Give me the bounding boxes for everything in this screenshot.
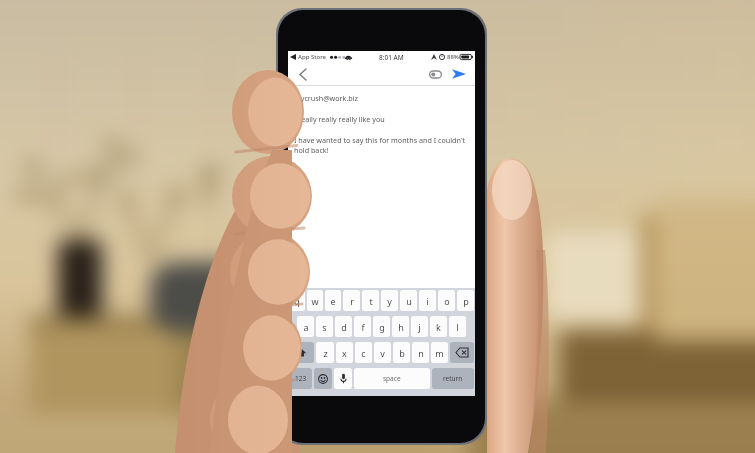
staticText: 88% — [447, 53, 459, 61]
staticText: x — [342, 347, 347, 359]
button[interactable]: c — [355, 342, 372, 363]
staticText: z — [323, 347, 328, 359]
button[interactable]: b — [393, 342, 410, 363]
button[interactable]: m — [431, 342, 448, 363]
button[interactable]: h — [392, 316, 409, 337]
button[interactable]: f — [354, 316, 371, 337]
button[interactable]: y — [381, 290, 398, 311]
button[interactable]: d — [335, 316, 352, 337]
button[interactable]: s — [316, 316, 333, 337]
staticText: w — [311, 295, 319, 307]
staticText: l — [456, 321, 459, 333]
button[interactable]: o — [438, 290, 455, 311]
button[interactable]: Emoji — [314, 368, 332, 389]
staticText: g — [379, 321, 385, 333]
staticText: r — [350, 295, 354, 307]
staticText: f — [361, 321, 365, 333]
staticText: i — [426, 295, 429, 307]
button[interactable]: e — [325, 290, 341, 311]
button[interactable]: j — [411, 316, 428, 337]
button[interactable]: x — [336, 342, 353, 363]
staticText: h — [398, 321, 404, 333]
staticText: o — [444, 295, 450, 307]
button[interactable]: k — [430, 316, 447, 337]
staticText: v — [380, 347, 385, 359]
button[interactable]: Backspace — [450, 342, 474, 363]
staticText: a — [303, 321, 309, 333]
button[interactable]: g — [373, 316, 390, 337]
button[interactable]: r — [343, 290, 360, 311]
button[interactable]: space — [354, 368, 430, 389]
staticText: n — [418, 347, 424, 359]
button[interactable]: Send — [449, 64, 469, 84]
staticText: space — [383, 374, 401, 383]
button[interactable]: n — [412, 342, 429, 363]
staticText: App Store — [298, 53, 327, 61]
button[interactable]: return — [432, 368, 474, 389]
staticText: p — [463, 295, 469, 307]
staticText: e — [330, 295, 336, 307]
button[interactable]: u — [400, 290, 417, 311]
staticText: I have wanted to say this for months and… — [294, 135, 466, 155]
staticText: k — [436, 321, 441, 333]
button[interactable]: Attach — [425, 64, 445, 84]
staticText: 8:01 AM — [379, 53, 404, 62]
staticText: u — [406, 295, 412, 307]
staticText: d — [341, 321, 347, 333]
staticText: I really really really like you — [294, 114, 385, 124]
button[interactable]: v — [374, 342, 391, 363]
button[interactable]: t — [362, 290, 379, 311]
button[interactable]: z — [316, 342, 334, 363]
staticText: y — [387, 295, 392, 307]
staticText: j — [418, 321, 421, 333]
button[interactable]: Shift — [289, 342, 314, 363]
staticText: t — [369, 295, 373, 307]
button[interactable]: Back — [294, 65, 312, 83]
staticText: m — [435, 347, 444, 359]
button[interactable]: 123 — [289, 368, 312, 389]
button[interactable]: i — [419, 290, 436, 311]
staticText: s — [322, 321, 327, 333]
staticText: return — [443, 374, 463, 383]
staticText: q — [294, 295, 300, 307]
button[interactable]: a — [297, 316, 314, 337]
button[interactable]: l — [449, 316, 466, 337]
button[interactable]: p — [457, 290, 474, 311]
staticText: 123 — [295, 374, 307, 383]
staticText: mycrush@work.biz — [294, 93, 358, 103]
button[interactable]: w — [307, 290, 323, 311]
button[interactable]: q — [289, 290, 305, 311]
staticText: c — [361, 347, 366, 359]
button[interactable]: Dictate — [334, 368, 352, 389]
staticText: b — [399, 347, 405, 359]
